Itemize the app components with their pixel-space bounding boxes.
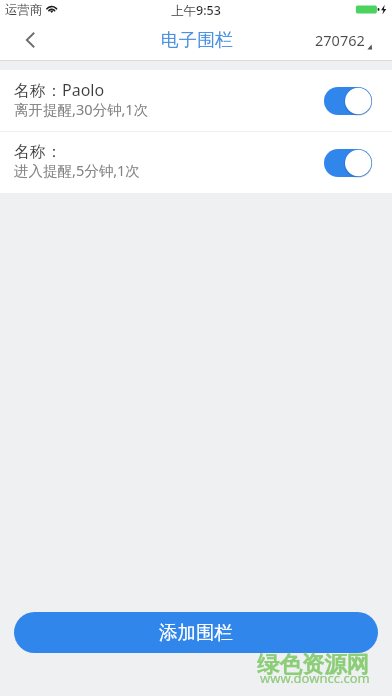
button[interactable]: Back <box>0 20 52 60</box>
staticText: 电子围栏 <box>161 29 233 52</box>
staticText: 270762 <box>315 30 365 50</box>
staticText: 名称：Paolo <box>14 79 105 101</box>
staticText: 上午9:53 <box>171 2 221 19</box>
staticText: 名称： <box>14 142 62 162</box>
button[interactable]: 名称：Paolo <box>0 70 392 131</box>
staticText: www.downcc.com <box>260 669 370 687</box>
staticText: 进入提醒,5分钟,1次 <box>14 160 140 180</box>
staticText: 添加围栏 <box>159 621 233 644</box>
staticText: 运营商 <box>5 2 43 18</box>
button[interactable]: 添加围栏 <box>14 612 378 653</box>
button[interactable]: Toggle <box>324 87 372 115</box>
button[interactable]: 名称： <box>0 132 392 193</box>
staticText: 离开提醒,30分钟,1次 <box>14 99 149 119</box>
staticText: 绿色资源网 <box>257 650 369 678</box>
button[interactable]: Toggle <box>324 149 372 177</box>
